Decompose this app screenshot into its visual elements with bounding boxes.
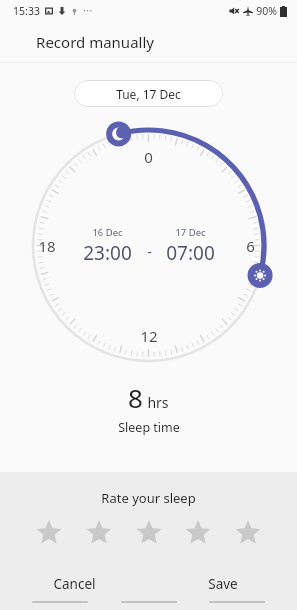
button[interactable]: Save (148, 567, 297, 601)
staticText: hrs (147, 393, 169, 412)
staticText: 90% (256, 4, 277, 18)
staticText: 6 (246, 236, 255, 256)
staticText: ⋯ (83, 5, 93, 17)
staticText: 16 Dec (92, 226, 123, 239)
button[interactable]: Tue, 17 Dec (74, 80, 223, 107)
staticText: 17 Dec (175, 226, 206, 239)
staticText: Record manually (36, 32, 154, 52)
button[interactable]: Rate 4 stars (183, 518, 213, 548)
button[interactable]: Rate 3 stars (134, 518, 164, 548)
staticText: Cancel (53, 575, 96, 593)
staticText: 07:00 (166, 240, 215, 266)
staticText: - (147, 242, 152, 261)
staticText: Tue, 17 Dec (116, 86, 181, 102)
staticText: 23:00 (83, 240, 132, 266)
staticText: 12 (140, 326, 158, 346)
button[interactable]: Rate 5 stars (233, 518, 263, 548)
staticText: 0 (144, 147, 153, 167)
staticText: 18 (38, 236, 56, 256)
staticText: Save (208, 575, 238, 593)
button[interactable]: Cancel (0, 567, 148, 601)
staticText: 8 (128, 380, 143, 415)
button[interactable]: Rate 1 stars (34, 518, 64, 548)
button[interactable]: Rate 2 stars (84, 518, 114, 548)
staticText: 15:33 (13, 4, 40, 18)
staticText: Rate your sleep (101, 489, 196, 507)
staticText: Sleep time (118, 419, 180, 436)
